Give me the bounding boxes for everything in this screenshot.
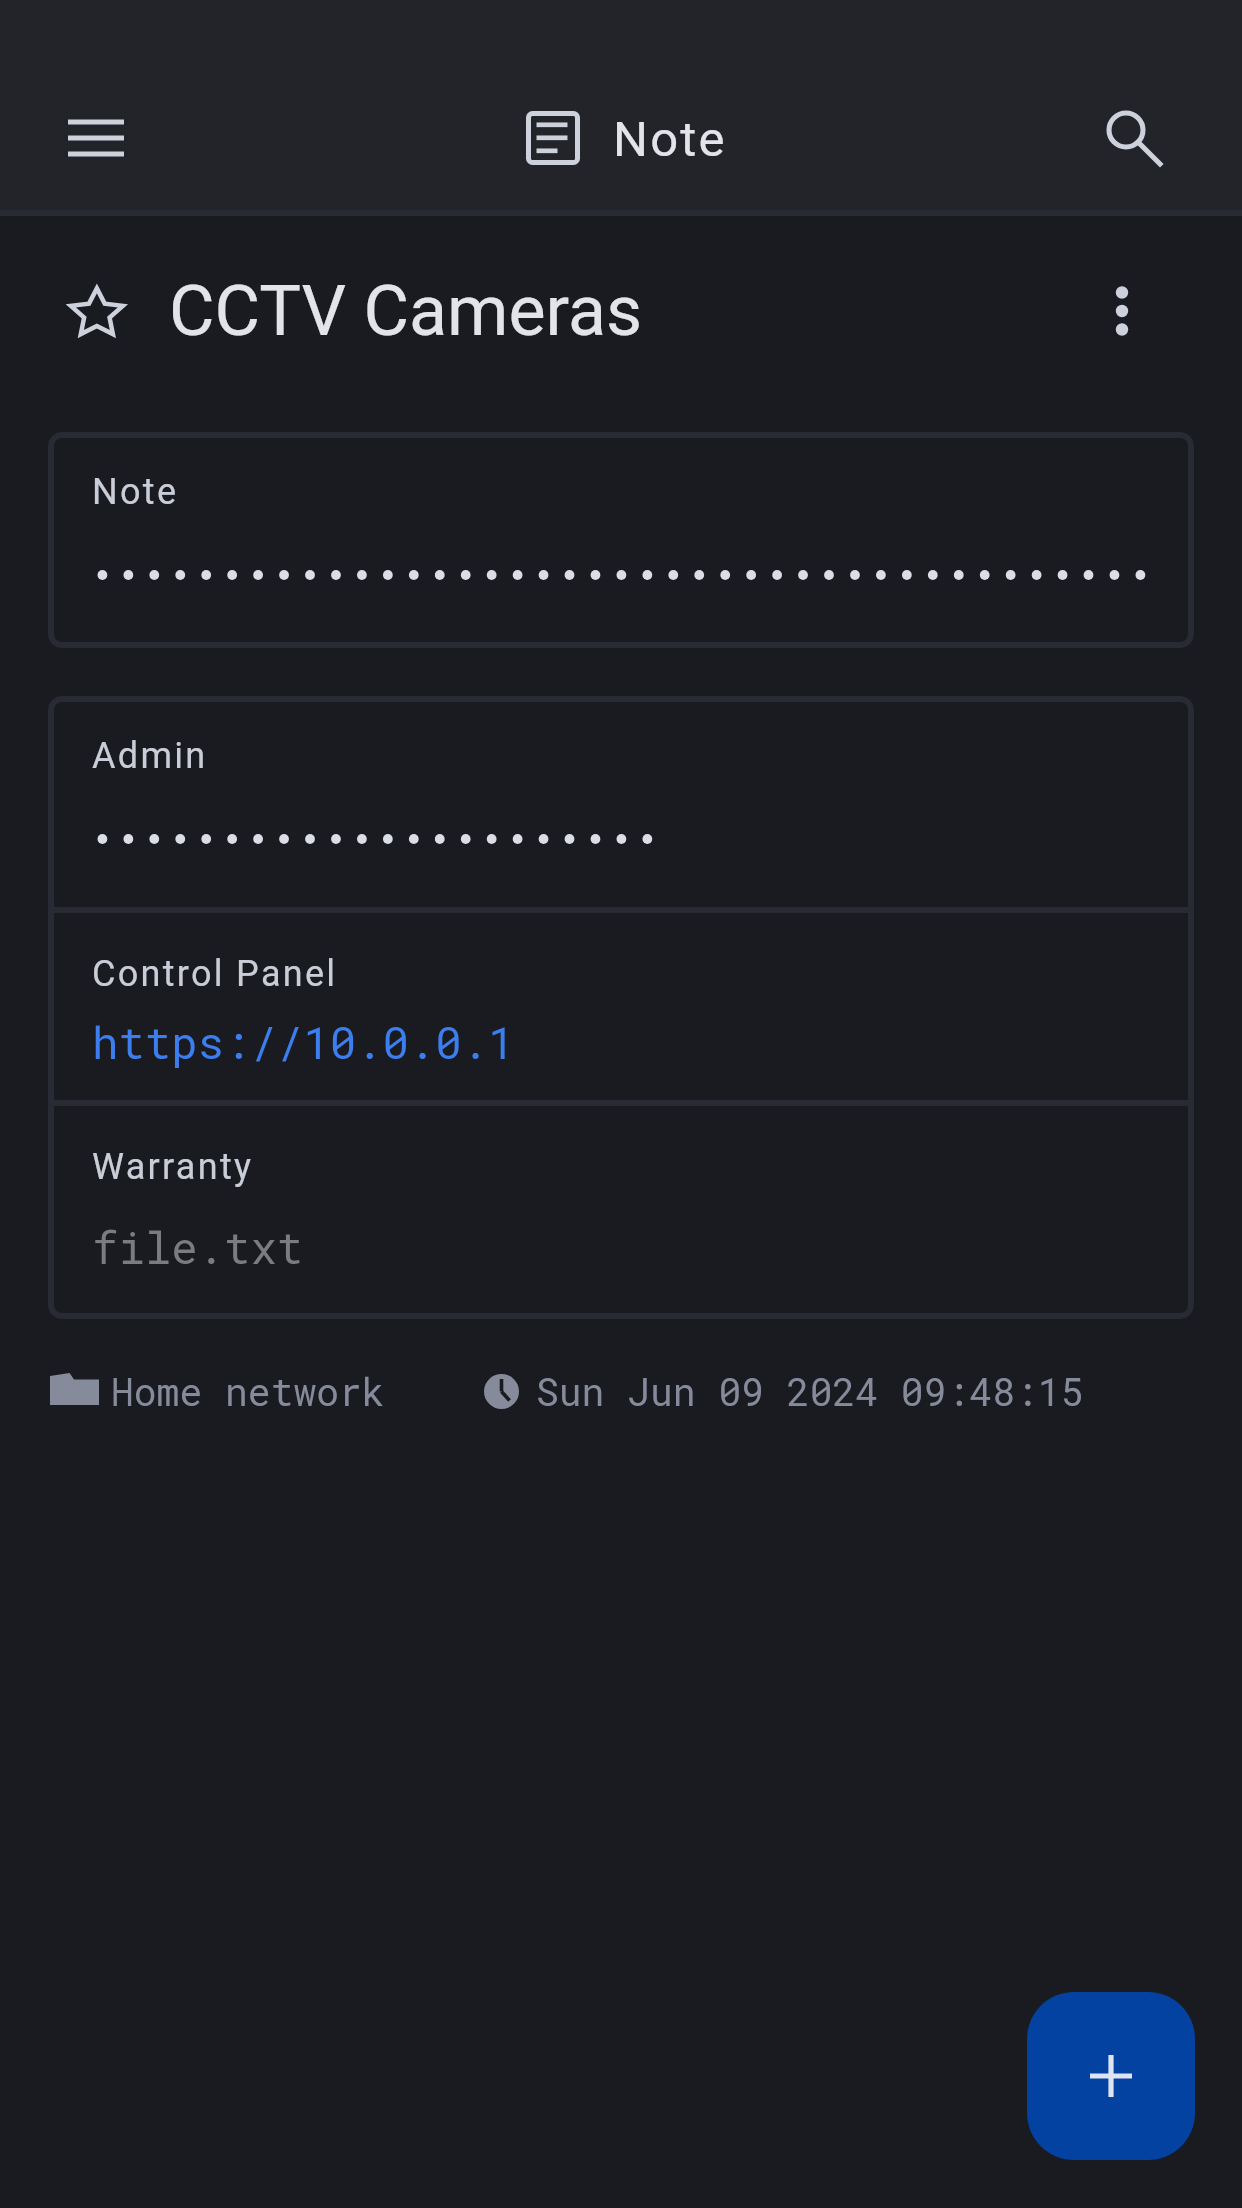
staticText: Home network (111, 1366, 385, 1416)
staticText: file.txt (92, 1218, 304, 1276)
button[interactable]: Create note (1027, 1992, 1195, 2160)
staticText: https://10.0.0.1 (92, 1013, 515, 1071)
button[interactable]: Control Panel (48, 913, 1194, 1100)
button[interactable]: Admin (48, 696, 1194, 907)
button[interactable]: Warranty (48, 1106, 1194, 1319)
button[interactable]: Favourite (39, 253, 155, 369)
staticText: Admin (92, 735, 208, 777)
staticText: Control Panel (92, 953, 338, 995)
button[interactable]: Note (48, 432, 1194, 648)
staticText: Note (613, 111, 727, 168)
staticText: CCTV Cameras (169, 270, 643, 352)
button[interactable]: Search (1068, 72, 1184, 188)
button[interactable]: More options (1064, 253, 1180, 369)
button[interactable]: Open navigation menu (38, 80, 154, 196)
staticText: Note (92, 471, 179, 513)
staticText: Sun Jun 09 2024 09:48:15 (536, 1366, 1084, 1416)
staticText: Warranty (92, 1146, 254, 1188)
